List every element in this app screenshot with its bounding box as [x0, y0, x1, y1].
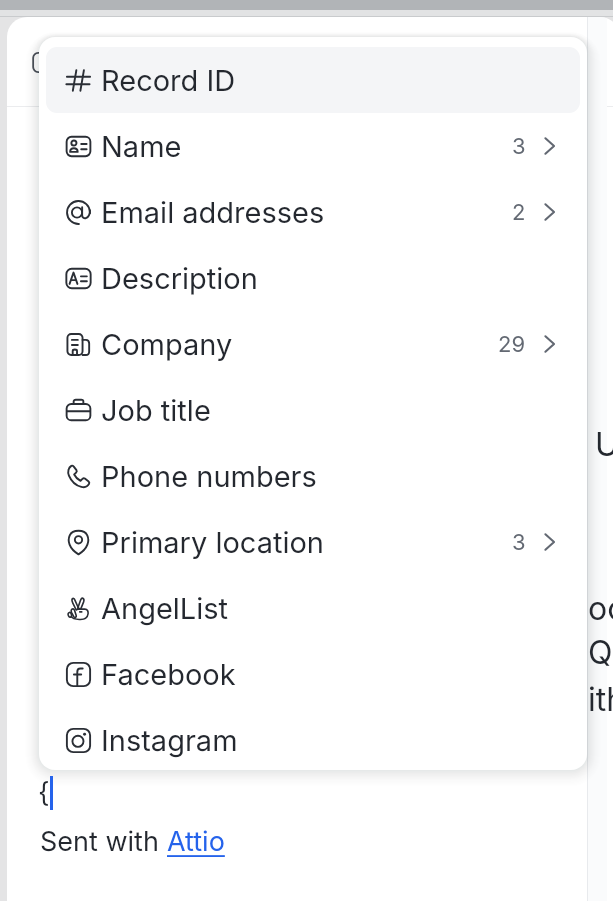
staticText: Primary location: [101, 525, 325, 560]
button[interactable]: Facebook: [46, 641, 580, 707]
staticText: U: [595, 425, 613, 464]
button[interactable]: Primary location: [46, 509, 580, 575]
staticText: Name: [101, 129, 182, 164]
button[interactable]: Attio: [167, 825, 225, 858]
button[interactable]: Job title: [46, 377, 580, 443]
staticText: Job title: [101, 393, 211, 428]
button[interactable]: Email addresses: [46, 179, 580, 245]
button[interactable]: Description: [46, 245, 580, 311]
button[interactable]: Phone numbers: [46, 443, 580, 509]
staticText: Company: [101, 327, 233, 362]
button[interactable]: Company: [46, 311, 580, 377]
staticText: {: [38, 776, 50, 809]
staticText: ith: [588, 680, 613, 719]
staticText: AngelList: [101, 591, 229, 626]
staticText: Description: [101, 261, 258, 296]
button[interactable]: Record ID: [46, 47, 580, 113]
button[interactable]: Instagram: [46, 707, 580, 770]
staticText: Sent with: [40, 825, 167, 858]
button[interactable]: Name: [46, 113, 580, 179]
staticText: Phone numbers: [101, 459, 317, 494]
staticText: 2: [512, 199, 526, 226]
staticText: Q4: [588, 633, 613, 672]
staticText: oc: [588, 589, 613, 628]
staticText: Facebook: [101, 657, 236, 692]
staticText: 29: [498, 331, 526, 358]
staticText: 3: [512, 133, 526, 160]
staticText: Email addresses: [101, 195, 325, 230]
button[interactable]: AngelList: [46, 575, 580, 641]
staticText: Instagram: [101, 723, 238, 758]
staticText: 3: [512, 529, 526, 556]
staticText: Record ID: [101, 63, 236, 98]
